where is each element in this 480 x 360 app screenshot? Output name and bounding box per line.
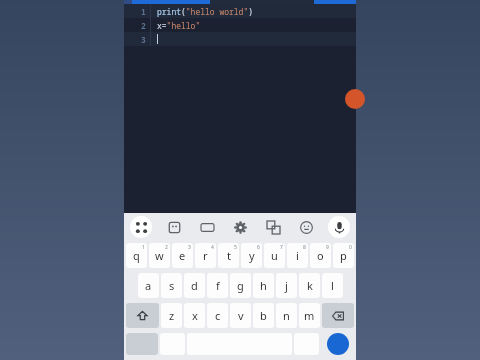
staticText: 9: [326, 244, 329, 251]
button[interactable]: c: [207, 303, 228, 328]
button[interactable]: Backspace: [322, 303, 354, 328]
button[interactable]: Shift: [126, 303, 159, 328]
button[interactable]: q: [126, 243, 147, 268]
staticText: y: [249, 248, 255, 263]
staticText: 2: [165, 244, 168, 251]
button[interactable]: n: [276, 303, 297, 328]
button[interactable]: l: [322, 273, 343, 298]
staticText: 0: [349, 244, 352, 251]
staticText: j: [285, 278, 288, 293]
staticText: d: [191, 278, 198, 293]
button[interactable]: s: [161, 273, 182, 298]
button[interactable]: Stickers: [163, 216, 185, 238]
button[interactable]: t: [218, 243, 239, 268]
staticText: a: [145, 278, 152, 293]
staticText: 1: [142, 244, 145, 251]
button[interactable]: e: [172, 243, 193, 268]
staticText: p: [340, 248, 347, 263]
staticText: 8: [303, 244, 306, 251]
staticText: t: [227, 248, 231, 263]
button[interactable]: y: [241, 243, 262, 268]
staticText: 5: [234, 244, 237, 251]
button[interactable]: k: [299, 273, 320, 298]
staticText: 4: [211, 244, 214, 251]
button[interactable]: j: [276, 273, 297, 298]
staticText: v: [238, 308, 244, 323]
staticText: 1: [141, 6, 146, 17]
button[interactable]: b: [253, 303, 274, 328]
button[interactable]: h: [253, 273, 274, 298]
button[interactable]: d: [184, 273, 205, 298]
staticText: k: [307, 278, 313, 293]
staticText: f: [216, 278, 220, 293]
button[interactable]: GIF: [196, 216, 218, 238]
button[interactable]: Run: [345, 89, 365, 109]
button[interactable]: Translate: [262, 216, 284, 238]
staticText: w: [155, 248, 164, 263]
staticText: 7: [280, 244, 283, 251]
button[interactable]: Voice input: [328, 216, 350, 238]
button[interactable]: o: [310, 243, 331, 268]
button[interactable]: i: [287, 243, 308, 268]
staticText: b: [260, 308, 267, 323]
button[interactable]: a: [138, 273, 159, 298]
button[interactable]: m: [299, 303, 320, 328]
staticText: z: [169, 308, 175, 323]
staticText: s: [169, 278, 175, 293]
staticText: m: [304, 308, 315, 323]
staticText: g: [237, 278, 244, 293]
staticText: u: [271, 248, 278, 263]
staticText: i: [296, 248, 299, 263]
button[interactable]: g: [230, 273, 251, 298]
staticText: o: [317, 248, 324, 263]
button[interactable]: p: [333, 243, 354, 268]
staticText: n: [283, 308, 290, 323]
button[interactable]: Enter: [321, 333, 354, 355]
button[interactable]: z: [161, 303, 182, 328]
button[interactable]: Settings: [229, 216, 251, 238]
button[interactable]: u: [264, 243, 285, 268]
button[interactable]: r: [195, 243, 216, 268]
staticText: q: [133, 248, 140, 263]
staticText: 3: [141, 34, 146, 45]
staticText: h: [260, 278, 267, 293]
staticText: x="hello": [157, 20, 201, 31]
staticText: 2: [141, 20, 146, 31]
staticText: c: [215, 308, 221, 323]
staticText: 6: [257, 244, 260, 251]
button[interactable]: v: [230, 303, 251, 328]
staticText: 3: [188, 244, 191, 251]
button[interactable]: Apps: [130, 216, 152, 238]
button[interactable]: x: [184, 303, 205, 328]
button[interactable]: f: [207, 273, 228, 298]
staticText: x: [192, 308, 198, 323]
staticText: l: [331, 278, 334, 293]
button[interactable]: Emoji: [295, 216, 317, 238]
staticText: e: [179, 248, 186, 263]
staticText: r: [203, 248, 208, 263]
staticText: print("hello world"): [157, 6, 253, 17]
button[interactable]: w: [149, 243, 170, 268]
